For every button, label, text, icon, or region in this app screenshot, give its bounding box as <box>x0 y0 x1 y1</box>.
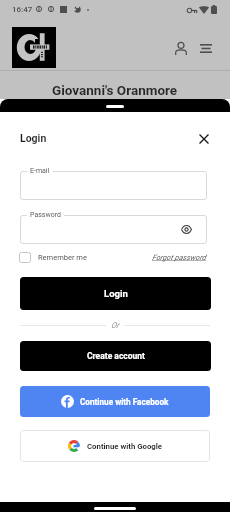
staticText: E-mail <box>30 167 50 175</box>
staticText: Login <box>104 288 128 299</box>
staticText: Forgot password <box>152 253 206 262</box>
staticText: Login <box>20 132 47 144</box>
button[interactable]: Giovanni's logo <box>12 27 56 68</box>
button[interactable]: Remember me <box>19 249 211 265</box>
staticText: Giovanni's Oranmore <box>52 82 178 98</box>
button[interactable]: Login <box>20 277 211 310</box>
staticText: Continue with Facebook <box>80 397 169 407</box>
button[interactable]: Show password <box>173 215 199 244</box>
button[interactable]: Close <box>193 128 215 150</box>
staticText: Remember me <box>38 253 87 262</box>
button[interactable]: Forgot password <box>152 249 206 265</box>
button[interactable] <box>20 171 207 200</box>
staticText: Password <box>30 211 61 219</box>
button[interactable]: Create account <box>20 341 211 371</box>
button[interactable]: Continue with Google <box>20 430 210 462</box>
staticText: Continue with Google <box>87 442 163 451</box>
button[interactable]: Continue with Facebook <box>20 386 210 417</box>
staticText: 16:47 <box>12 5 33 14</box>
button[interactable] <box>20 215 207 244</box>
button[interactable]: Menu <box>195 37 217 59</box>
staticText: Create account <box>87 351 145 361</box>
staticText: Or <box>111 321 119 330</box>
button[interactable]: Account <box>170 37 192 59</box>
